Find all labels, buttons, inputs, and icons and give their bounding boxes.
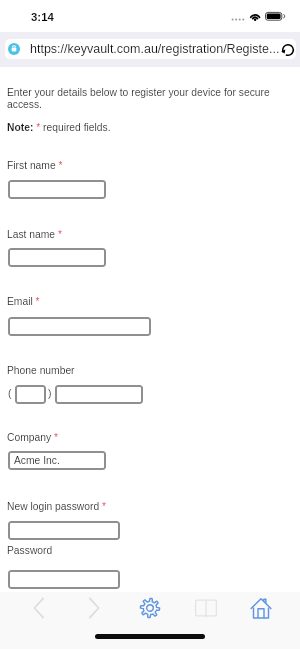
button[interactable]	[8, 248, 106, 267]
staticText: 3:14	[31, 11, 54, 24]
button[interactable]: Home	[244, 593, 278, 623]
button[interactable]: Reload page	[280, 42, 295, 57]
staticText: Company *	[7, 432, 58, 444]
staticText: )	[48, 388, 52, 400]
button[interactable]	[8, 521, 120, 540]
button[interactable]: Go forward	[77, 593, 111, 623]
button[interactable]: Go back	[22, 593, 56, 623]
staticText: Password	[7, 545, 53, 557]
staticText: Note: * required fields.	[7, 122, 111, 134]
button[interactable]	[8, 317, 151, 336]
button[interactable]	[15, 385, 46, 404]
staticText: Phone number	[7, 365, 75, 377]
staticText: (	[8, 388, 12, 400]
staticText: First name *	[7, 160, 63, 172]
button[interactable]: Settings	[133, 593, 167, 623]
staticText: https://keyvault.com.au/registration/Reg…	[30, 42, 280, 56]
button[interactable]	[55, 385, 143, 404]
staticText: Enter your details below to register you…	[7, 87, 270, 111]
button[interactable]	[8, 180, 106, 199]
button[interactable]: https://keyvault.com.au/registration/Reg…	[5, 39, 296, 59]
button[interactable]: Tabs	[189, 593, 223, 623]
button[interactable]: Acme Inc.	[8, 451, 106, 470]
staticText: Email *	[7, 296, 40, 308]
staticText: Acme Inc.	[14, 455, 60, 467]
button[interactable]	[8, 570, 120, 589]
staticText: New login password *	[7, 501, 107, 513]
staticText: Last name *	[7, 229, 62, 241]
